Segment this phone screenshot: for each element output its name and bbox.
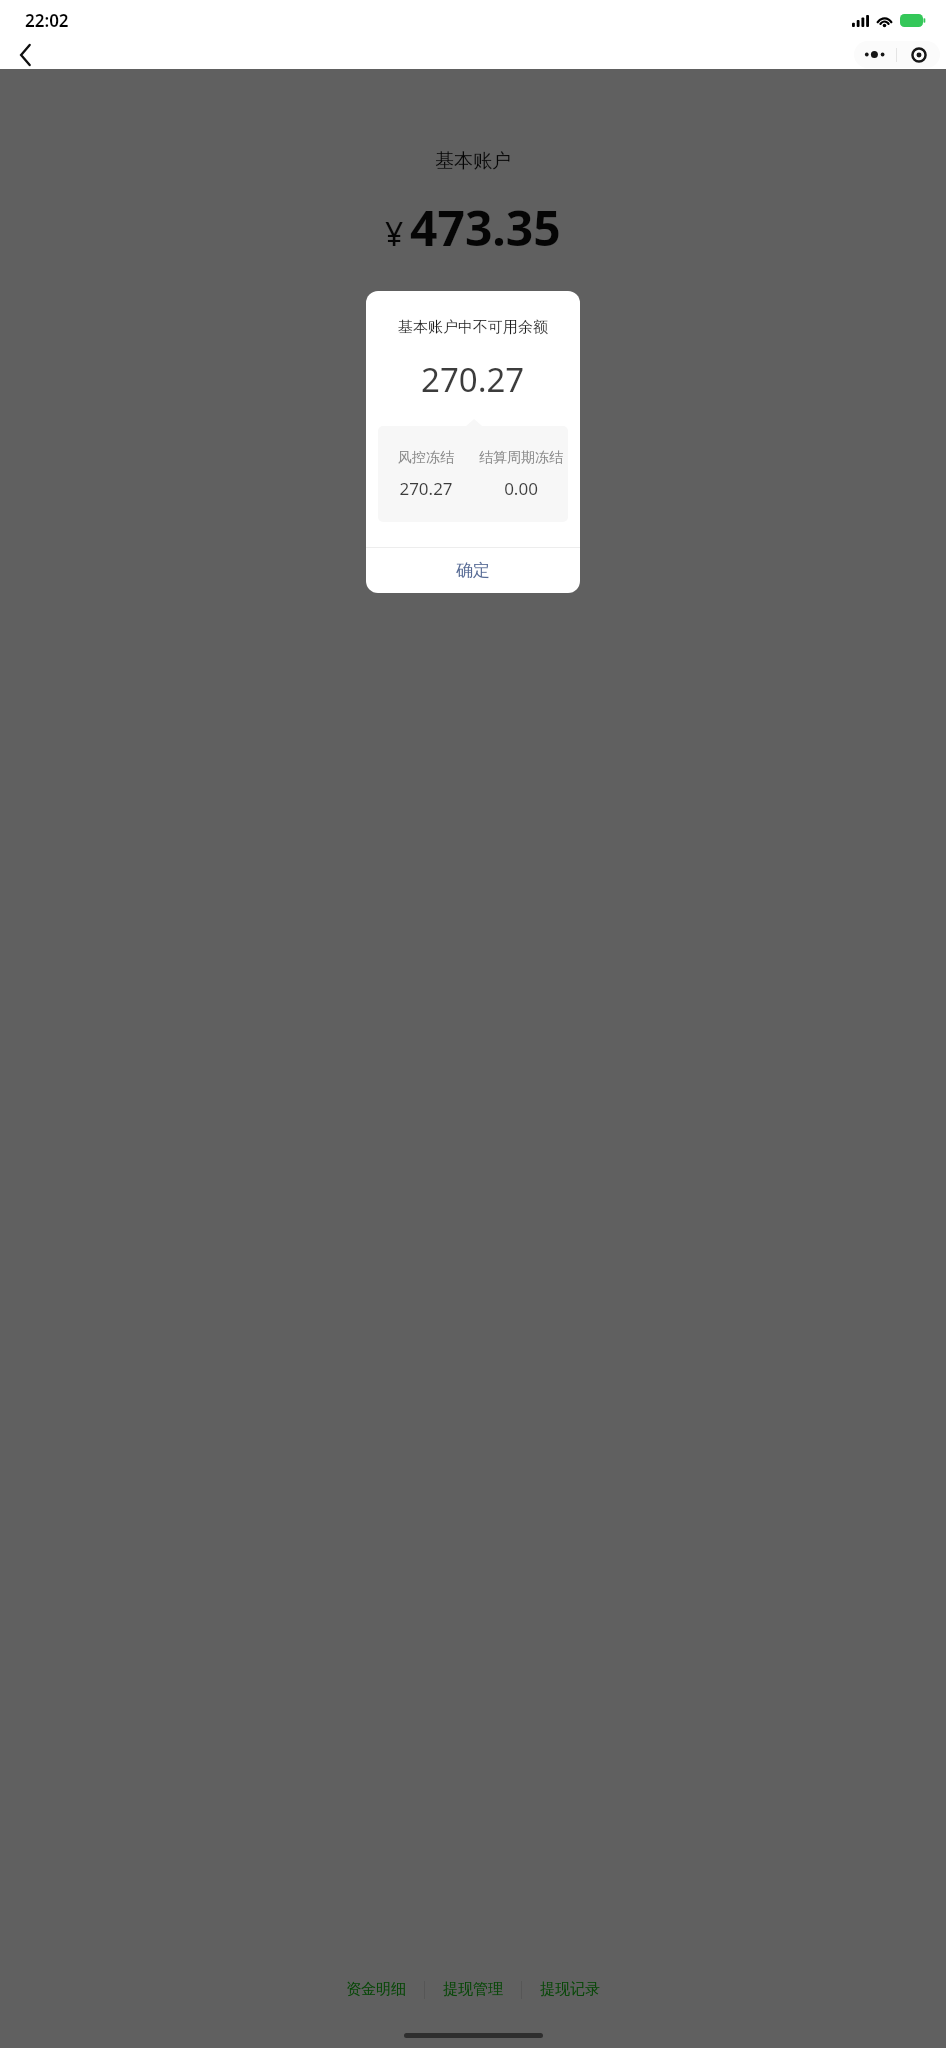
button[interactable]: 确定 [366,548,580,593]
staticText: 0.00 [504,477,538,500]
button[interactable]: More options [854,41,896,68]
staticText: 270.27 [399,477,453,500]
button[interactable]: 资金明细 [328,1973,424,2006]
button[interactable]: Back [6,40,44,69]
staticText: 270.27 [421,357,525,402]
staticText: 结算周期冻结 [479,449,563,467]
staticText: 基本账户中不可用余额 [398,318,548,337]
staticText: 资金明细 [346,1980,406,1999]
staticText: ¥ [385,212,404,256]
staticText: 提现记录 [540,1980,600,1999]
button[interactable]: Close mini program [897,41,940,68]
button[interactable]: 提现记录 [522,1973,618,2006]
button[interactable]: 提现管理 [425,1973,521,2006]
staticText: 22:02 [25,9,69,32]
staticText: 基本账户 [435,149,511,173]
staticText: 提现管理 [443,1980,503,1999]
staticText: 473.35 [410,195,561,260]
staticText: 风控冻结 [398,449,454,467]
staticText: 确定 [456,560,490,581]
